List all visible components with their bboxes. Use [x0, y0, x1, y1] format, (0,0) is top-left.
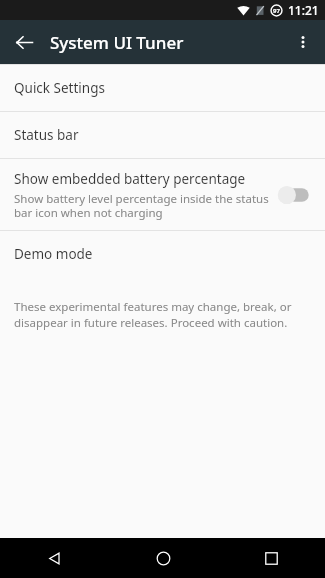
- button[interactable]: Show embedded battery percentage toggle: [277, 183, 313, 207]
- staticText: Status bar: [14, 126, 79, 144]
- button[interactable]: Recent apps: [217, 538, 325, 578]
- staticText: Show embedded battery percentage: [14, 170, 246, 188]
- staticText: 97: [273, 7, 280, 15]
- staticText: Show battery level percentage inside the…: [14, 191, 269, 220]
- staticText: Demo mode: [14, 245, 93, 263]
- staticText: Quick Settings: [14, 79, 105, 97]
- staticText: System UI Tuner: [50, 31, 184, 54]
- button[interactable]: More options: [283, 22, 323, 62]
- button[interactable]: Back: [0, 538, 109, 578]
- button[interactable]: Status bar: [0, 112, 325, 158]
- button[interactable]: Quick Settings: [0, 65, 325, 111]
- button[interactable]: Back: [4, 22, 44, 62]
- button[interactable]: Show embedded battery percentage: [0, 159, 325, 230]
- staticText: 11:21: [288, 2, 319, 18]
- button[interactable]: Home: [109, 538, 217, 578]
- button[interactable]: Demo mode: [0, 231, 325, 277]
- staticText: These experimental features may change, …: [14, 299, 307, 330]
